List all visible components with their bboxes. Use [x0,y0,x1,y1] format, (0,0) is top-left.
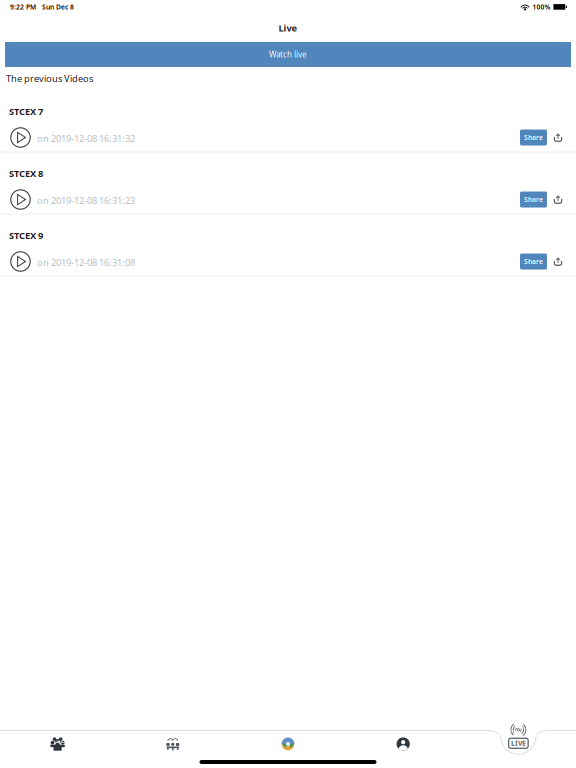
button[interactable]: Share STCEX 7 [547,126,569,148]
staticText: 100% [532,3,550,11]
button[interactable]: Share [520,253,547,269]
button[interactable]: Play STCEX 7 [5,123,36,151]
staticText: on 2019-12-08 16:31:32 [37,132,135,145]
button[interactable]: Share STCEX 8 [547,188,569,210]
button[interactable]: Teams [115,733,230,755]
staticText: STCEX 8 [9,167,43,180]
staticText: LIVE [511,739,526,748]
staticText: Share [524,133,543,142]
button[interactable]: Play STCEX 9 [5,247,36,275]
staticText: Watch live [269,49,307,60]
button[interactable]: Profile [346,733,461,755]
staticText: STCEX 9 [9,229,43,242]
staticText: Live [278,22,297,34]
button[interactable]: Community [0,733,115,755]
button[interactable]: Play STCEX 8 [5,185,36,213]
button[interactable]: Watch live [5,42,571,67]
button[interactable]: Share STCEX 9 [547,250,569,272]
button[interactable]: Go live [461,720,576,753]
staticText: on 2019-12-08 16:31:23 [37,194,135,207]
button[interactable]: Share [520,191,547,207]
staticText: Sun Dec 8 [42,3,74,11]
staticText: Share [524,195,543,204]
staticText: on 2019-12-08 16:31:08 [37,256,135,269]
staticText: Share [524,257,543,266]
staticText: 9:22 PM [10,3,36,11]
button[interactable]: Share [520,129,547,145]
staticText: STCEX 7 [9,105,43,118]
button[interactable]: Home [230,733,346,755]
staticText: The previous Videos [6,72,93,85]
